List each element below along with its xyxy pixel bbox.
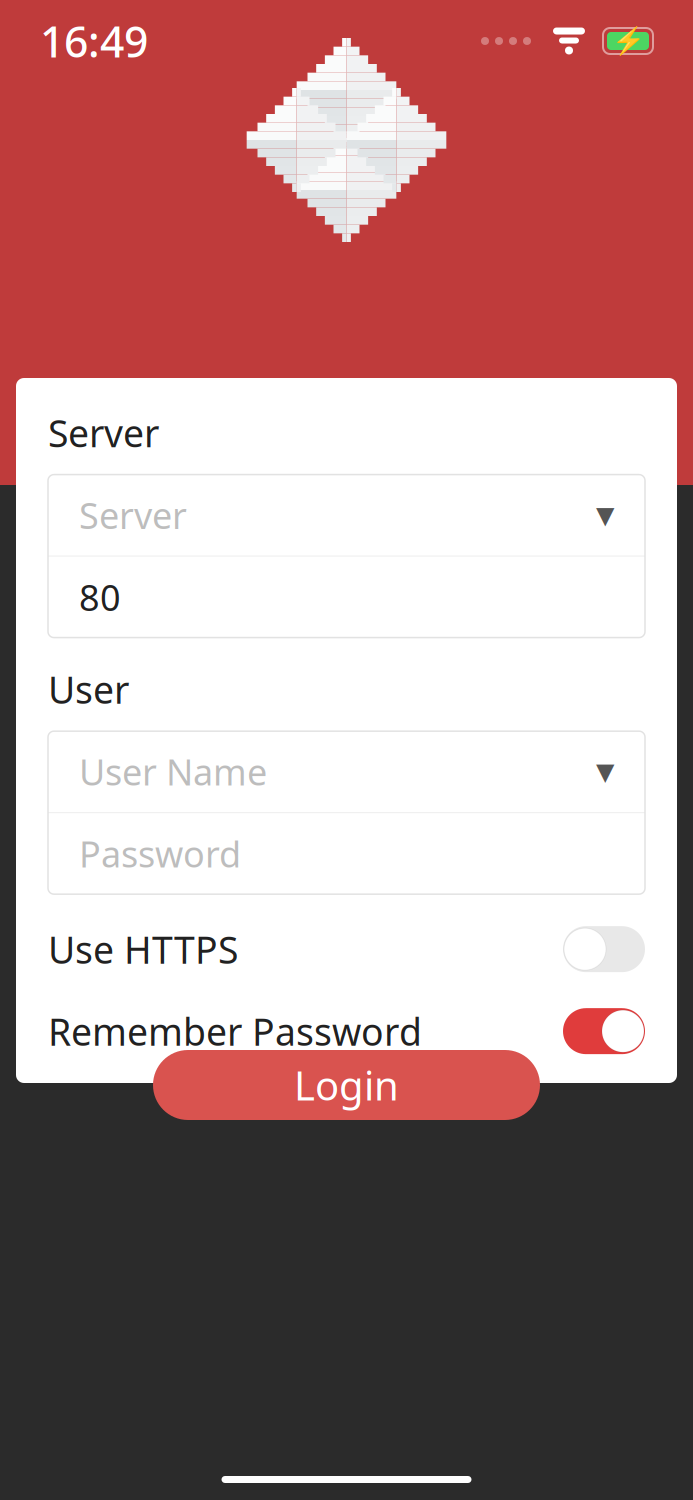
staticText: ▼ [596,501,614,529]
button[interactable]: 80 [48,557,645,638]
staticText: User [48,665,129,714]
button[interactable]: Password [48,813,645,894]
button[interactable]: User Name [48,731,645,812]
staticText: Password [79,830,241,878]
staticText: Login [294,1058,399,1111]
staticText: 16:49 [40,13,148,69]
staticText: Server [79,491,187,539]
button[interactable]: Use HTTPS [48,914,645,984]
button[interactable]: Remember Password [48,996,645,1066]
staticText: Use HTTPS [48,924,238,974]
staticText: 80 [79,573,121,621]
staticText: User Name [79,748,267,796]
staticText: Remember Password [48,1006,422,1056]
button[interactable]: Login [153,1050,540,1120]
button[interactable]: Server [48,475,645,556]
staticText: ⚡ [611,26,644,56]
staticText: ▼ [596,758,614,785]
staticText: Server [48,408,159,458]
